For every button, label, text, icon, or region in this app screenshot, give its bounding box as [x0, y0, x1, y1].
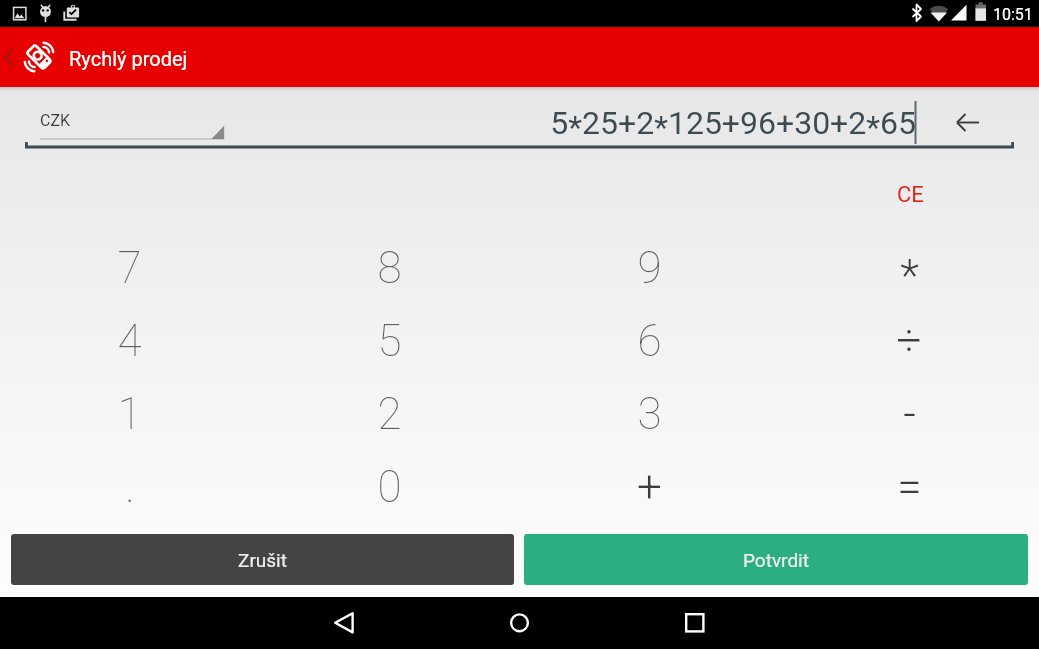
button[interactable]: 7	[0, 231, 259, 304]
button[interactable]: Home	[478, 597, 560, 649]
button[interactable]: Navigate up	[0, 27, 24, 87]
button[interactable]: 9	[519, 231, 779, 304]
staticText: Potvrdit	[743, 549, 809, 571]
button[interactable]: 5	[259, 304, 519, 377]
button[interactable]: Potvrdit	[524, 534, 1028, 585]
staticText: 6	[637, 315, 662, 367]
staticText: 1	[117, 388, 142, 440]
button[interactable]: +	[519, 450, 779, 523]
staticText: CE	[897, 182, 924, 208]
button[interactable]: Backspace	[942, 100, 994, 146]
staticText: 7	[117, 242, 142, 294]
staticText: +	[637, 461, 662, 513]
staticText: Rychlý prodej	[69, 47, 188, 70]
staticText: 4	[117, 315, 142, 367]
staticText: -	[903, 388, 916, 440]
button[interactable]: 3	[519, 377, 779, 450]
staticText: 5*25+2*125+96+30+2*65	[420, 104, 916, 144]
staticText: 0	[377, 461, 402, 513]
button[interactable]: 1	[0, 377, 259, 450]
button[interactable]: Zrušit	[11, 534, 514, 585]
button[interactable]: 2	[259, 377, 519, 450]
button[interactable]: 8	[259, 231, 519, 304]
staticText: CZK	[40, 111, 71, 130]
button[interactable]: CE	[884, 177, 936, 213]
staticText: .	[125, 461, 135, 513]
staticText: =	[897, 461, 922, 513]
button[interactable]: ÷	[779, 304, 1039, 377]
button[interactable]: 0	[259, 450, 519, 523]
button[interactable]: Back	[304, 597, 386, 649]
staticText: ÷	[896, 315, 922, 367]
button[interactable]: 6	[519, 304, 779, 377]
staticText: 9	[637, 242, 662, 294]
button[interactable]: CZK	[26, 103, 226, 145]
button[interactable]: 4	[0, 304, 259, 377]
button[interactable]: -	[779, 377, 1039, 450]
staticText: 2	[377, 388, 402, 440]
staticText: 5	[377, 315, 402, 367]
staticText: *	[900, 250, 919, 302]
button[interactable]: Recent apps	[654, 597, 736, 649]
button[interactable]: =	[779, 450, 1039, 523]
staticText: Zrušit	[238, 549, 287, 571]
button[interactable]: *	[779, 231, 1039, 304]
staticText: 3	[637, 388, 662, 440]
staticText: 10:51	[993, 5, 1033, 24]
staticText: 8	[377, 242, 402, 294]
